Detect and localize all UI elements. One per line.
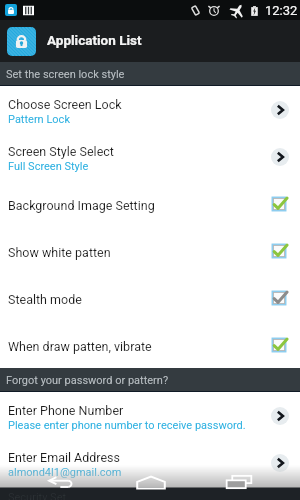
button[interactable]: Recent apps — [192, 472, 286, 500]
button[interactable]: Enter Phone Number — [0, 392, 300, 439]
staticText: Set the screen lock style — [6, 68, 125, 81]
staticText: Please enter phone number to receive pas… — [8, 419, 246, 432]
button[interactable]: Home — [110, 472, 192, 500]
staticText: Application List — [47, 32, 142, 48]
staticText: Background Image Setting — [8, 198, 155, 213]
button[interactable]: Back — [14, 472, 110, 500]
staticText: 12:32 — [265, 3, 298, 18]
staticText: Pattern Lock — [8, 113, 70, 126]
staticText: Enter Phone Number — [8, 403, 124, 418]
staticText: Show white patten — [8, 245, 111, 260]
button[interactable]: Enter Email Address — [0, 439, 300, 486]
staticText: Security Set — [8, 491, 67, 500]
button[interactable]: When draw patten, vibrate — [0, 321, 300, 368]
staticText: Screen Style Select — [8, 144, 114, 159]
staticText: Enter Email Address — [8, 450, 121, 465]
button[interactable]: Background Image Setting — [0, 180, 300, 227]
staticText: almond4l1@gmail.com — [8, 466, 122, 479]
staticText: Full Screen Style — [8, 160, 89, 173]
button[interactable]: Stealth mode — [0, 274, 300, 321]
staticText: Choose Screen Lock — [8, 97, 122, 112]
staticText: When draw patten, vibrate — [8, 339, 152, 354]
staticText: Forgot your password or pattern? — [6, 374, 169, 387]
button[interactable]: Screen Style Select — [0, 133, 300, 180]
staticText: Stealth mode — [8, 292, 82, 307]
button[interactable]: Show white patten — [0, 227, 300, 274]
button[interactable]: Choose Screen Lock — [0, 86, 300, 133]
button[interactable]: Application List — [0, 20, 300, 62]
